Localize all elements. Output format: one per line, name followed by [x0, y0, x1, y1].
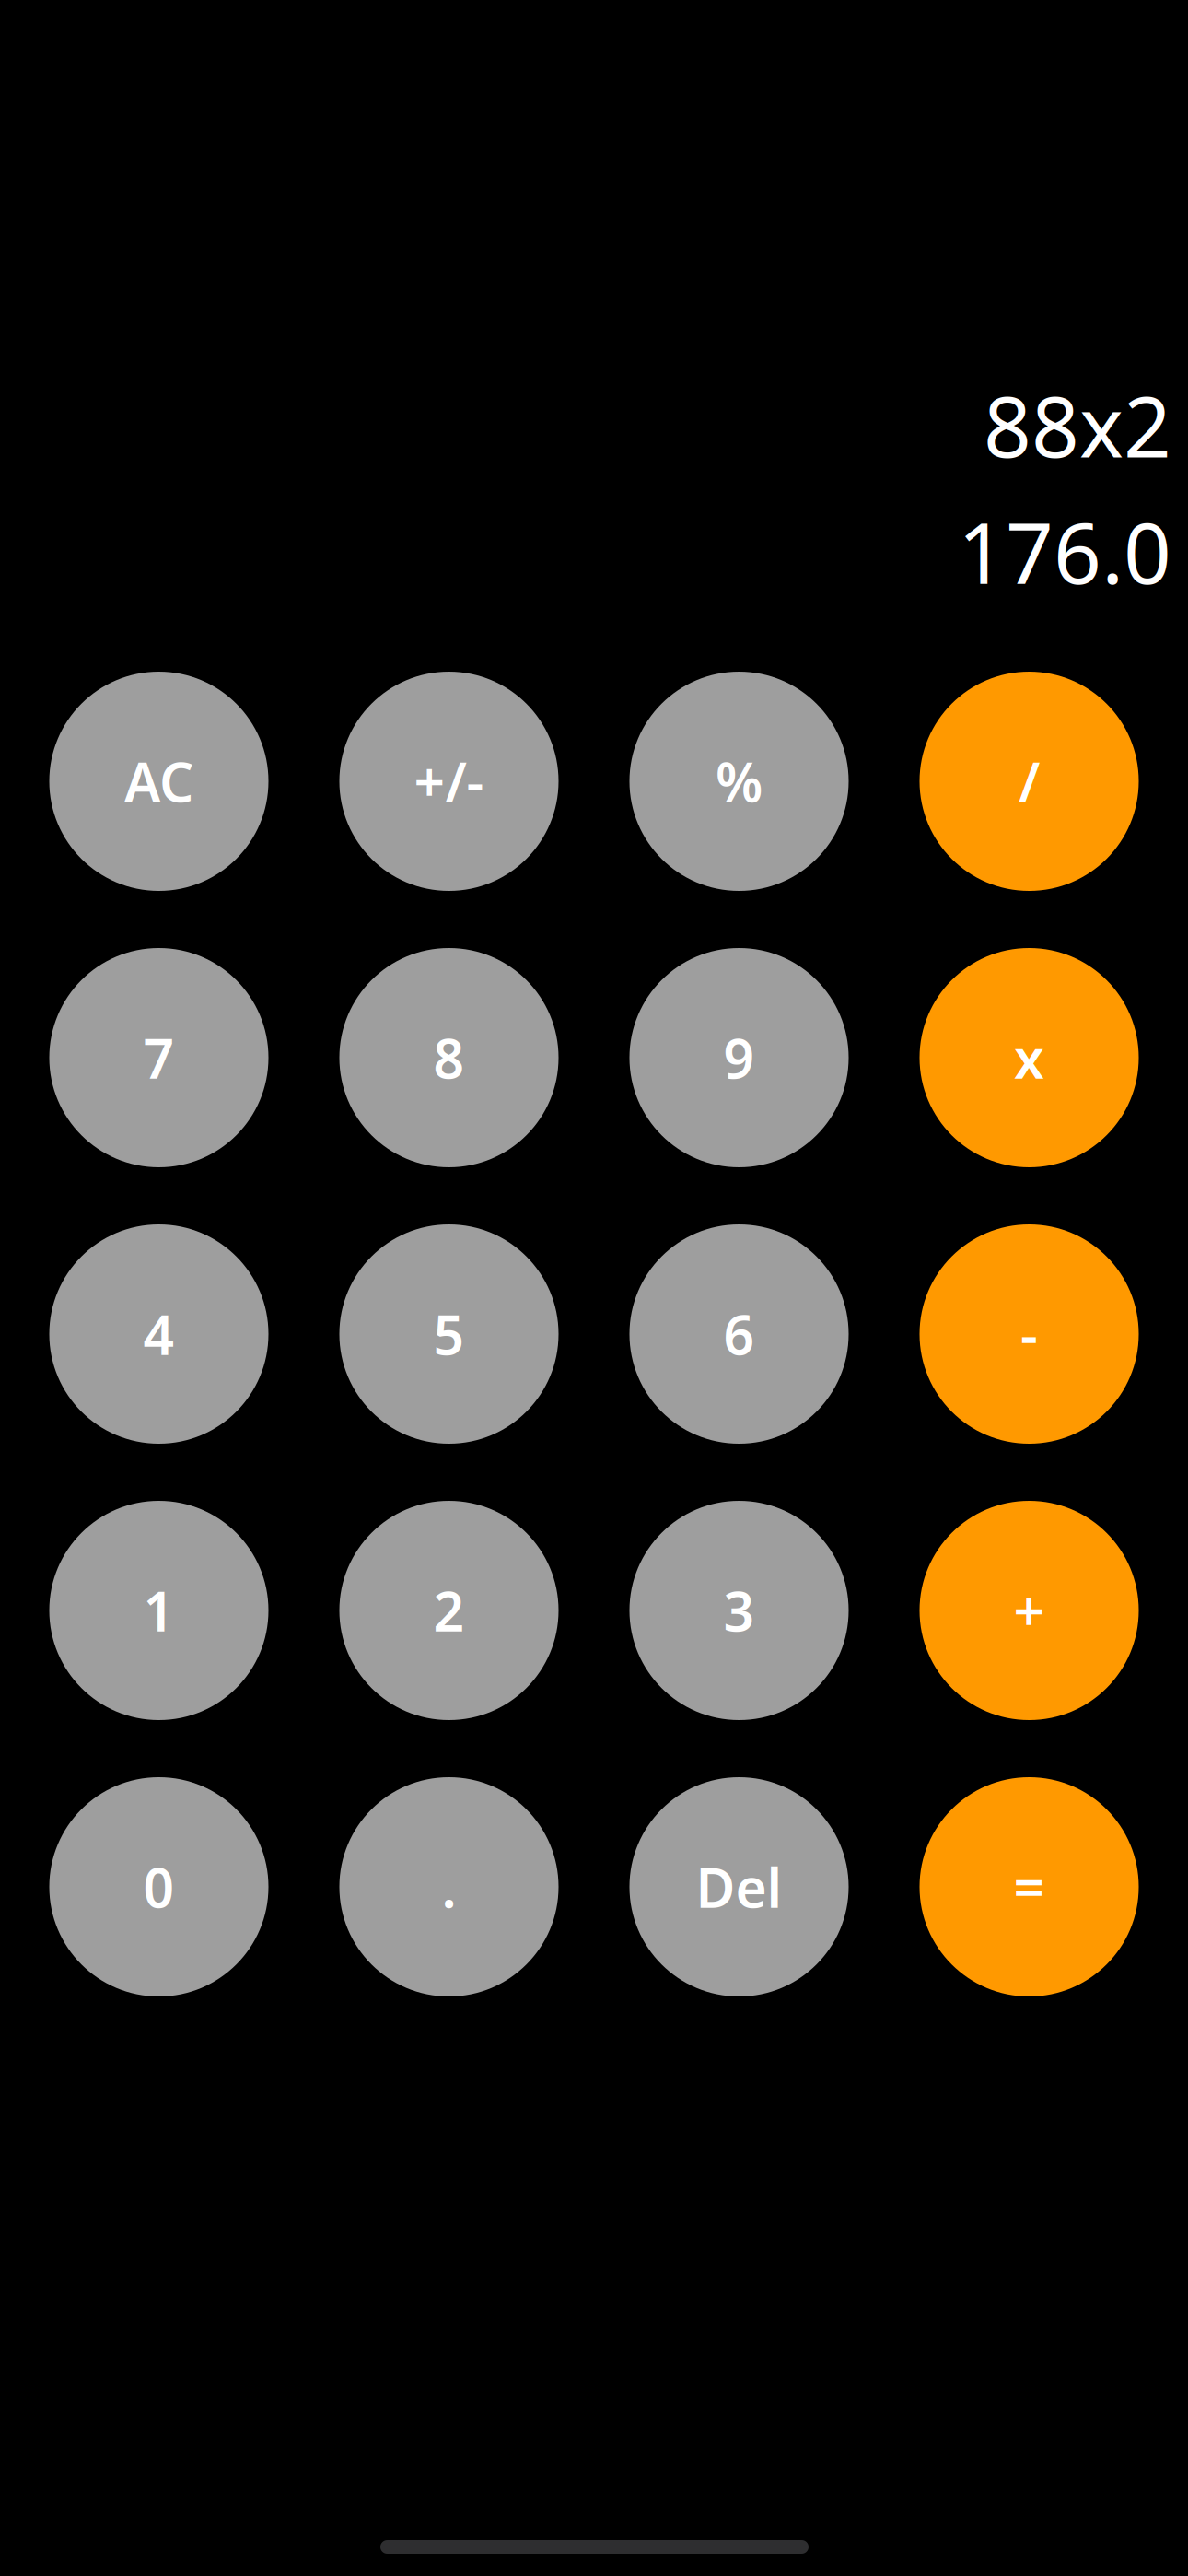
button[interactable]: Percent [629, 672, 849, 891]
staticText: x [1014, 1022, 1044, 1094]
staticText: 176.0 [958, 496, 1171, 607]
staticText: 2 [433, 1575, 465, 1646]
button[interactable]: 1 [49, 1501, 268, 1720]
staticText: + [1013, 1575, 1045, 1646]
button[interactable]: Toggle sign [339, 672, 559, 891]
staticText: . [442, 1851, 456, 1923]
staticText: 1 [143, 1575, 175, 1646]
button[interactable]: Subtract [920, 1224, 1139, 1444]
button[interactable]: Delete [629, 1777, 849, 1996]
button[interactable]: 3 [629, 1501, 849, 1720]
button[interactable]: Decimal point [339, 1777, 559, 1996]
staticText: = [1013, 1851, 1045, 1923]
staticText: % [716, 745, 763, 817]
button[interactable]: 4 [49, 1224, 268, 1444]
button[interactable]: Equals [920, 1777, 1139, 1996]
button[interactable]: 2 [339, 1501, 559, 1720]
button[interactable]: Divide [920, 672, 1139, 891]
staticText: 7 [143, 1022, 175, 1094]
button[interactable]: Add [920, 1501, 1139, 1720]
staticText: 3 [723, 1575, 755, 1646]
staticText: AC [124, 745, 193, 817]
staticText: 5 [433, 1298, 465, 1370]
staticText: +/- [414, 745, 484, 817]
staticText: 4 [143, 1298, 175, 1370]
staticText: 8 [433, 1022, 465, 1094]
button[interactable]: 8 [339, 948, 559, 1167]
staticText: 6 [723, 1298, 755, 1370]
staticText: / [1019, 745, 1040, 817]
button[interactable]: 5 [339, 1224, 559, 1444]
button[interactable]: All clear [49, 672, 268, 891]
staticText: - [1020, 1298, 1038, 1370]
button[interactable]: Multiply [920, 948, 1139, 1167]
staticText: 88x2 [984, 369, 1171, 480]
staticText: 9 [723, 1022, 755, 1094]
button[interactable]: 6 [629, 1224, 849, 1444]
button[interactable]: 0 [49, 1777, 268, 1996]
staticText: Del [696, 1851, 782, 1923]
button[interactable]: 9 [629, 948, 849, 1167]
staticText: 0 [143, 1851, 175, 1923]
button[interactable]: 7 [49, 948, 268, 1167]
